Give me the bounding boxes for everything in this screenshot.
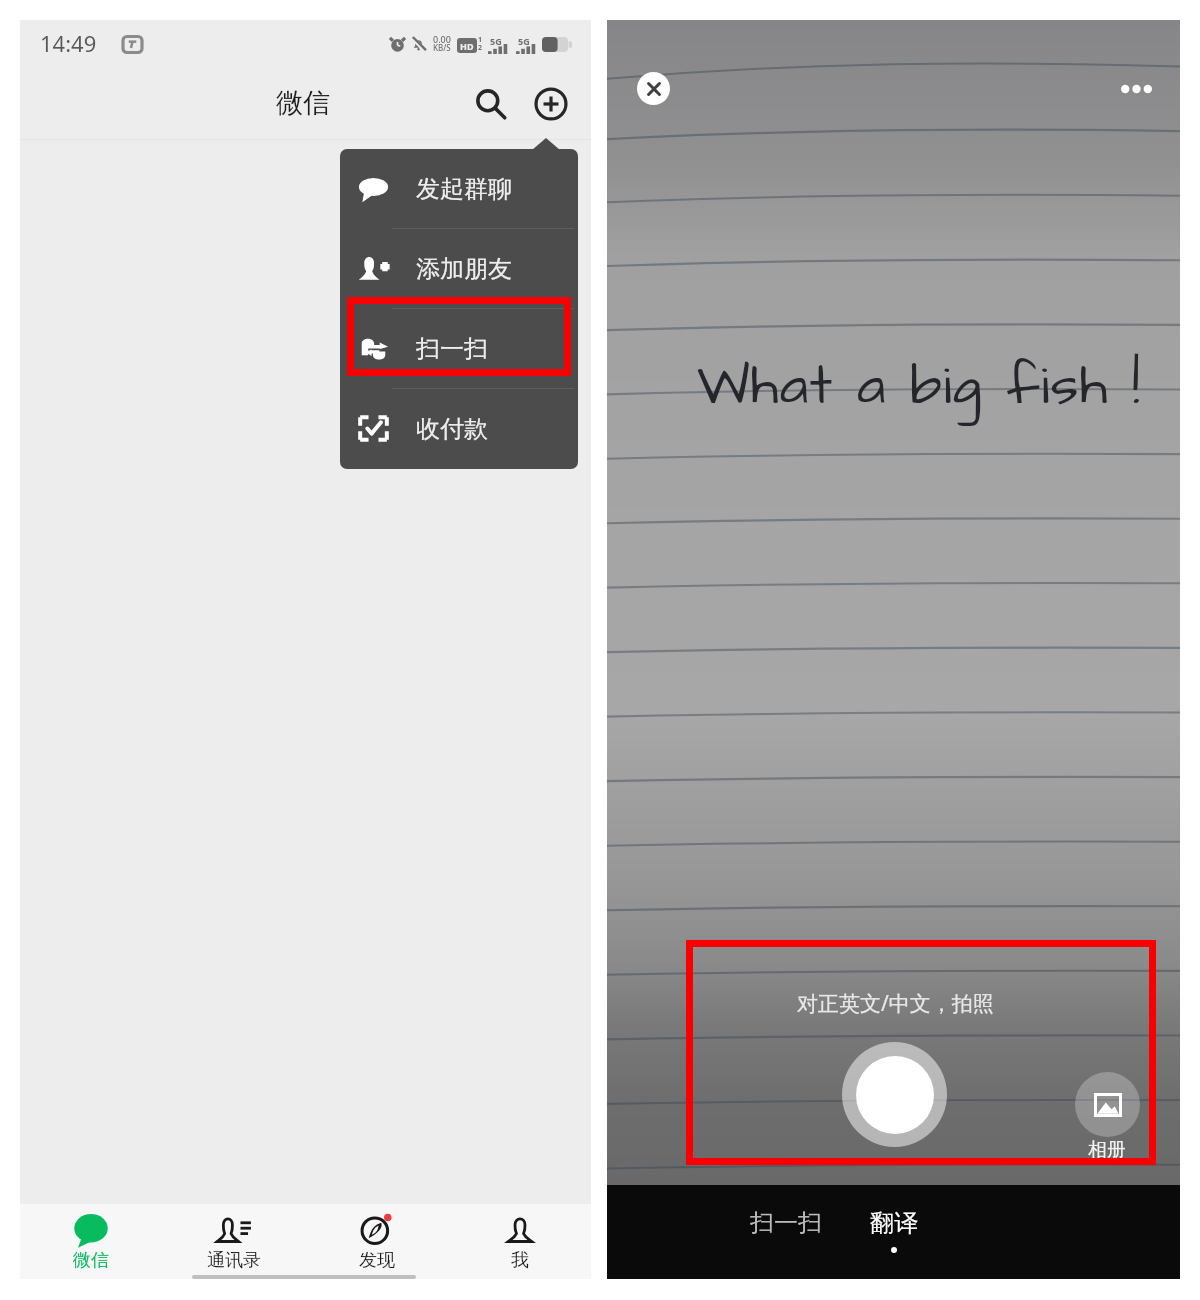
staticText: 5G <box>490 35 502 47</box>
button[interactable]: More options <box>1115 74 1157 104</box>
button[interactable]: 翻译 <box>857 1201 931 1245</box>
staticText: 0.00 <box>433 33 451 45</box>
staticText: 2 <box>478 43 483 53</box>
button[interactable]: Search <box>467 80 515 128</box>
button[interactable]: Add <box>527 80 575 128</box>
button[interactable]: 微信 <box>20 1204 162 1279</box>
staticText: 相册 <box>1088 1138 1126 1162</box>
staticText: 5G <box>518 35 530 47</box>
staticText: 14:49 <box>40 28 97 58</box>
button[interactable]: 发现 <box>305 1204 448 1279</box>
staticText: 我 <box>511 1249 529 1272</box>
staticText: 添加朋友 <box>416 254 512 284</box>
button[interactable]: 添加朋友 <box>340 229 578 308</box>
staticText: 扫一扫 <box>750 1208 822 1238</box>
button[interactable]: Album <box>1075 1072 1140 1137</box>
button[interactable]: 扫一扫 <box>340 309 578 388</box>
button[interactable]: 发起群聊 <box>340 149 578 228</box>
staticText: What a big fish ! <box>697 348 1142 426</box>
button[interactable]: 我 <box>448 1204 591 1279</box>
button[interactable]: 通讯录 <box>162 1204 305 1279</box>
staticText: 微信 <box>73 1249 109 1272</box>
staticText: 1 <box>478 35 483 45</box>
button[interactable]: Take photo <box>842 1042 947 1147</box>
button[interactable]: 收付款 <box>340 389 578 468</box>
staticText: KB/S <box>433 42 451 53</box>
staticText: 微信 <box>276 86 330 120</box>
staticText: 对正英文/中文，拍照 <box>797 989 994 1018</box>
button[interactable]: 扫一扫 <box>746 1201 826 1245</box>
staticText: 翻译 <box>870 1208 918 1238</box>
staticText: 发现 <box>359 1249 395 1272</box>
staticText: HD <box>460 40 474 52</box>
staticText: 发起群聊 <box>416 174 512 204</box>
staticText: 收付款 <box>416 414 488 444</box>
button[interactable]: Close <box>637 72 670 105</box>
staticText: 扫一扫 <box>416 334 488 364</box>
staticText: 通讯录 <box>207 1249 261 1272</box>
